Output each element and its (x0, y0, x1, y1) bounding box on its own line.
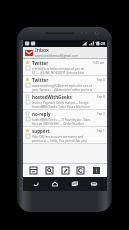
other: Star (25, 77, 30, 82)
button[interactable]: Back (30, 178, 42, 190)
staticText: support (32, 128, 50, 134)
other: Select (26, 83, 30, 87)
button[interactable]: Star (23, 59, 107, 75)
button[interactable]: Recent apps (69, 178, 81, 190)
button[interactable]: Search (44, 165, 55, 176)
staticText: Twitter (32, 60, 49, 66)
button[interactable]: Star (23, 127, 107, 143)
staticText: Your ORDers account username and (32, 135, 84, 139)
staticText: Invoice Payment Confirmation — Image (32, 101, 89, 105)
staticText: Sep 3 (97, 95, 105, 99)
other: Star (25, 60, 30, 65)
other: Select (26, 100, 30, 104)
button[interactable]: More options (91, 165, 102, 176)
button[interactable]: Home (49, 178, 61, 190)
staticText: Sep 4 (97, 78, 105, 82)
staticText: hostedWithGeeks — IT Foundry Inc. Sales (32, 118, 91, 122)
staticText: 11:28 (95, 41, 106, 46)
other: Select (26, 117, 30, 121)
button[interactable]: Compose (60, 165, 71, 176)
button[interactable]: Star (23, 93, 107, 109)
button[interactable]: Star (23, 110, 107, 126)
other: Star (25, 94, 30, 99)
staticText: your Tweets — @AwesomeCrafter you're a (32, 88, 92, 92)
staticText: 9:45 am (93, 61, 105, 65)
staticText: Inbox (35, 47, 49, 54)
staticText: Twitter (32, 77, 49, 83)
staticText: awesomefakemail@gmail.com (35, 54, 78, 58)
button[interactable]: Archive (28, 165, 39, 176)
staticText: no-reply (32, 111, 51, 117)
button[interactable]: Gmail (23, 47, 107, 59)
staticText: hostedWithGeeks Order Hours Mitchcom (32, 105, 90, 109)
button[interactable]: Menu (88, 178, 100, 190)
other: Select (26, 134, 30, 138)
button[interactable]: Refresh (75, 165, 86, 176)
staticText: Receipt 080042380 — Order Number (32, 122, 84, 126)
other: Gmail (25, 50, 33, 56)
staticText: scarlet@scarletfox mentioned you on Twit… (32, 67, 93, 71)
staticText: RT — @JUNE_NOBODY1 @douveblue (32, 71, 84, 75)
staticText: hostedWithGeeks (32, 94, 72, 100)
staticText: password — Hello, You joined that your (32, 139, 88, 143)
staticText: awesomething@GBoared replied to one of (32, 84, 92, 88)
staticText: Sep 1 (97, 129, 105, 133)
other: Star (25, 111, 30, 116)
other: Select (26, 66, 30, 70)
button[interactable]: Star (23, 76, 107, 92)
other: Star (25, 128, 30, 133)
staticText: Sep 3 (97, 112, 105, 116)
